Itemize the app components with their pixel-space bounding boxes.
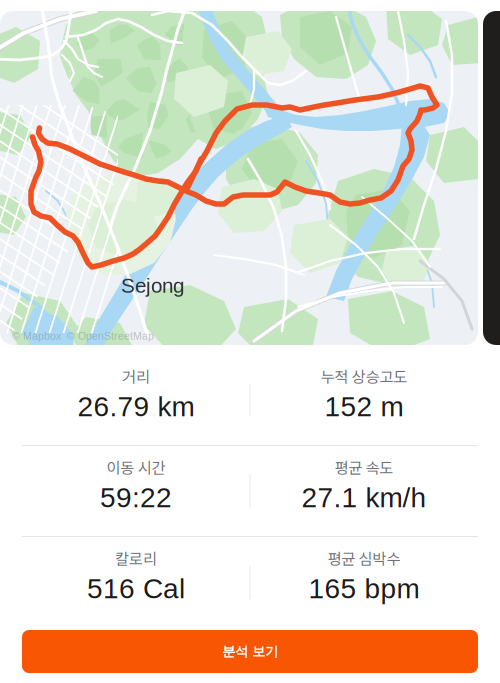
- staticText: 26.79 km: [77, 391, 194, 422]
- staticText: 칼로리: [115, 547, 157, 569]
- staticText: Sejong: [121, 274, 184, 297]
- staticText: 평균 심박수: [327, 547, 400, 569]
- staticText: 27.1 km/h: [301, 482, 426, 513]
- button[interactable]: 분석 보기: [22, 630, 478, 673]
- staticText: 152 m: [324, 391, 403, 422]
- staticText: © Mapbox © OpenStreetMap: [12, 330, 154, 342]
- staticText: 평균 속도: [334, 456, 393, 478]
- staticText: 59:22: [100, 482, 172, 513]
- staticText: 165 bpm: [308, 573, 419, 604]
- staticText: 516 Cal: [87, 573, 185, 604]
- staticText: 분석 보기: [222, 643, 278, 660]
- staticText: 누적 상승고도: [320, 365, 407, 387]
- staticText: 거리: [122, 365, 150, 387]
- staticText: 이동 시간: [106, 456, 165, 478]
